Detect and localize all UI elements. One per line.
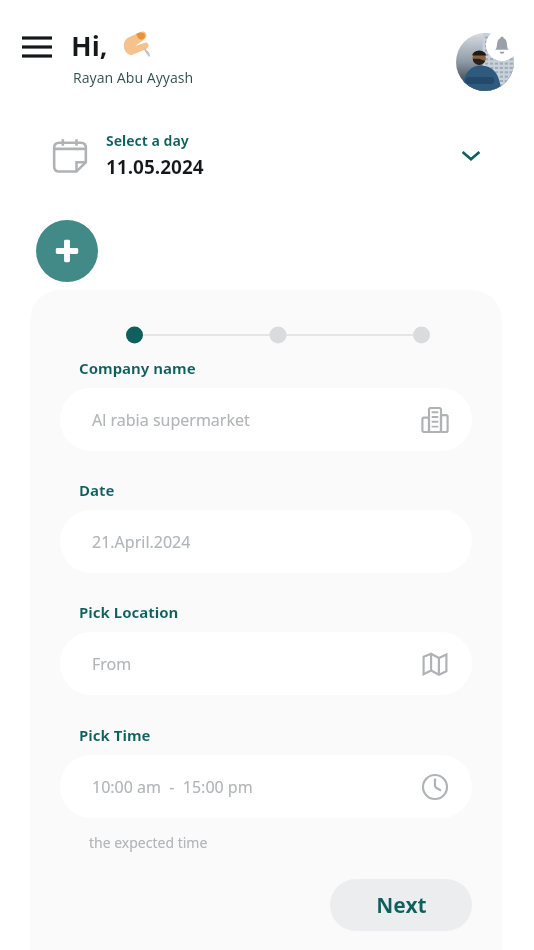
button[interactable]: From <box>60 632 472 695</box>
staticText: 11.05.2024 <box>106 154 204 180</box>
staticText: Select a day <box>106 131 189 150</box>
button[interactable]: Expand <box>456 140 486 170</box>
staticText: Rayan Abu Ayyash <box>73 68 194 87</box>
staticText: Date <box>79 480 115 500</box>
button[interactable]: Menu <box>14 26 62 74</box>
staticText: 10:00 am - 15:00 pm <box>92 776 253 798</box>
button[interactable]: 10:00 am - 15:00 pm <box>60 755 472 818</box>
staticText: Next <box>376 891 427 920</box>
button[interactable]: Add <box>36 220 98 282</box>
staticText: Company name <box>79 358 196 378</box>
button[interactable]: Notifications <box>486 29 518 61</box>
staticText: Al rabia supermarket <box>92 409 250 431</box>
button[interactable]: Profile <box>456 33 514 91</box>
staticText: Pick Time <box>79 725 151 745</box>
button[interactable]: Select a day <box>28 114 506 196</box>
button[interactable]: Al rabia supermarket <box>60 388 472 451</box>
staticText: Hi, <box>71 27 108 64</box>
button[interactable]: Next <box>330 879 472 931</box>
staticText: From <box>92 653 132 675</box>
staticText: the expected time <box>89 833 208 852</box>
staticText: 21.April.2024 <box>92 531 191 553</box>
staticText: Pick Location <box>79 602 179 622</box>
button[interactable]: 21.April.2024 <box>60 510 472 573</box>
